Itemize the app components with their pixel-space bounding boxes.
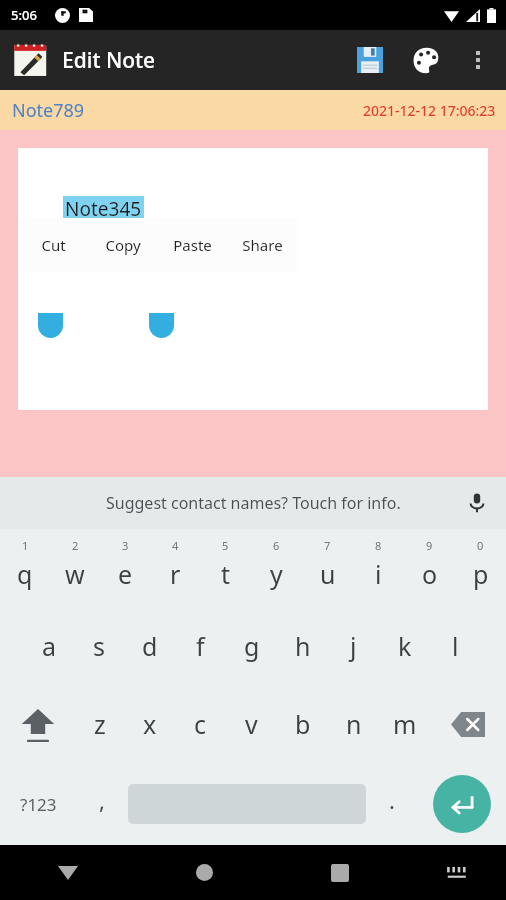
button[interactable]: Keyboard xyxy=(408,845,506,900)
staticText: Paste xyxy=(173,235,212,255)
staticText: p xyxy=(473,557,489,591)
staticText: y xyxy=(270,557,283,591)
staticText: ?123 xyxy=(20,793,57,816)
staticText: j xyxy=(350,629,357,663)
staticText: s xyxy=(93,629,105,663)
button[interactable]: Cut xyxy=(19,218,88,272)
staticText: o xyxy=(422,557,438,591)
staticText: d xyxy=(142,629,158,663)
button[interactable]: g xyxy=(226,607,277,685)
button[interactable]: j xyxy=(328,607,379,685)
button[interactable]: b xyxy=(277,685,328,763)
button[interactable]: 9 xyxy=(404,529,455,607)
staticText: r xyxy=(170,557,181,591)
button[interactable]: Share xyxy=(227,218,297,272)
staticText: m xyxy=(393,707,417,741)
staticText: x xyxy=(143,707,157,741)
staticText: 5:06 xyxy=(11,6,37,24)
staticText: 9 xyxy=(426,538,433,553)
button[interactable]: Voice input xyxy=(460,486,494,520)
staticText: Share xyxy=(242,235,283,255)
staticText: 2 xyxy=(72,538,79,553)
staticText: 2021-12-12 17:06:23 xyxy=(363,101,496,120)
button[interactable]: n xyxy=(328,685,379,763)
button[interactable]: k xyxy=(379,607,430,685)
button[interactable]: 7 xyxy=(302,529,353,607)
staticText: w xyxy=(65,557,85,591)
staticText: i xyxy=(375,557,382,591)
staticText: 1 xyxy=(22,538,29,553)
button[interactable]: l xyxy=(430,607,481,685)
staticText: 0 xyxy=(477,538,484,553)
button[interactable]: c xyxy=(175,685,226,763)
button[interactable]: 5 xyxy=(200,529,251,607)
button[interactable]: a xyxy=(24,607,74,685)
button[interactable]: h xyxy=(277,607,328,685)
staticText: Note345 xyxy=(65,196,142,222)
staticText: Note789 xyxy=(12,98,85,123)
button[interactable]: Color palette xyxy=(398,32,454,88)
staticText: a xyxy=(42,629,57,663)
button[interactable]: f xyxy=(175,607,226,685)
staticText: v xyxy=(245,707,258,741)
staticText: z xyxy=(94,707,106,741)
staticText: 5 xyxy=(222,538,229,553)
button[interactable]: Enter xyxy=(418,763,506,845)
staticText: l xyxy=(452,629,459,663)
button[interactable]: Save xyxy=(342,32,398,88)
button[interactable]: 2 xyxy=(50,529,100,607)
button[interactable]: Suggest contact names? Touch for info. xyxy=(106,492,401,514)
button[interactable]: 8 xyxy=(353,529,404,607)
button[interactable]: 3 xyxy=(100,529,150,607)
staticText: g xyxy=(244,629,260,663)
button[interactable]: s xyxy=(74,607,124,685)
button[interactable]: m xyxy=(379,685,430,763)
button[interactable]: 1 xyxy=(0,529,50,607)
staticText: Edit Note xyxy=(62,46,156,75)
staticText: 8 xyxy=(375,538,382,553)
staticText: 3 xyxy=(122,538,129,553)
staticText: , xyxy=(99,785,105,815)
staticText: u xyxy=(320,557,336,591)
staticText: Copy xyxy=(105,235,141,255)
staticText: . xyxy=(389,785,395,815)
staticText: k xyxy=(398,629,412,663)
button[interactable]: Back xyxy=(0,845,136,900)
button[interactable]: 0 xyxy=(455,529,506,607)
staticText: h xyxy=(295,629,311,663)
staticText: 6 xyxy=(273,538,280,553)
button[interactable]: ?123 xyxy=(0,763,76,845)
button[interactable]: Backspace xyxy=(430,685,506,763)
staticText: 7 xyxy=(324,538,331,553)
button[interactable]: , xyxy=(76,763,128,845)
button[interactable]: More options xyxy=(454,36,502,84)
staticText: f xyxy=(196,629,205,663)
staticText: Cut xyxy=(41,235,66,255)
staticText: t xyxy=(221,557,231,591)
staticText: q xyxy=(17,557,33,591)
button[interactable]: 4 xyxy=(150,529,200,607)
button[interactable]: v xyxy=(226,685,277,763)
button[interactable]: Recent apps xyxy=(272,845,408,900)
staticText: b xyxy=(295,707,311,741)
button[interactable]: Home xyxy=(136,845,272,900)
staticText: c xyxy=(194,707,207,741)
button[interactable]: Copy xyxy=(88,218,157,272)
button[interactable]: d xyxy=(124,607,175,685)
button[interactable]: z xyxy=(75,685,125,763)
button[interactable]: x xyxy=(125,685,175,763)
button[interactable]: 6 xyxy=(251,529,302,607)
button[interactable]: Paste xyxy=(157,218,227,272)
button[interactable]: Shift xyxy=(0,685,75,763)
staticText: e xyxy=(118,557,133,591)
staticText: 4 xyxy=(172,538,179,553)
button[interactable]: . xyxy=(366,763,418,845)
staticText: n xyxy=(346,707,362,741)
